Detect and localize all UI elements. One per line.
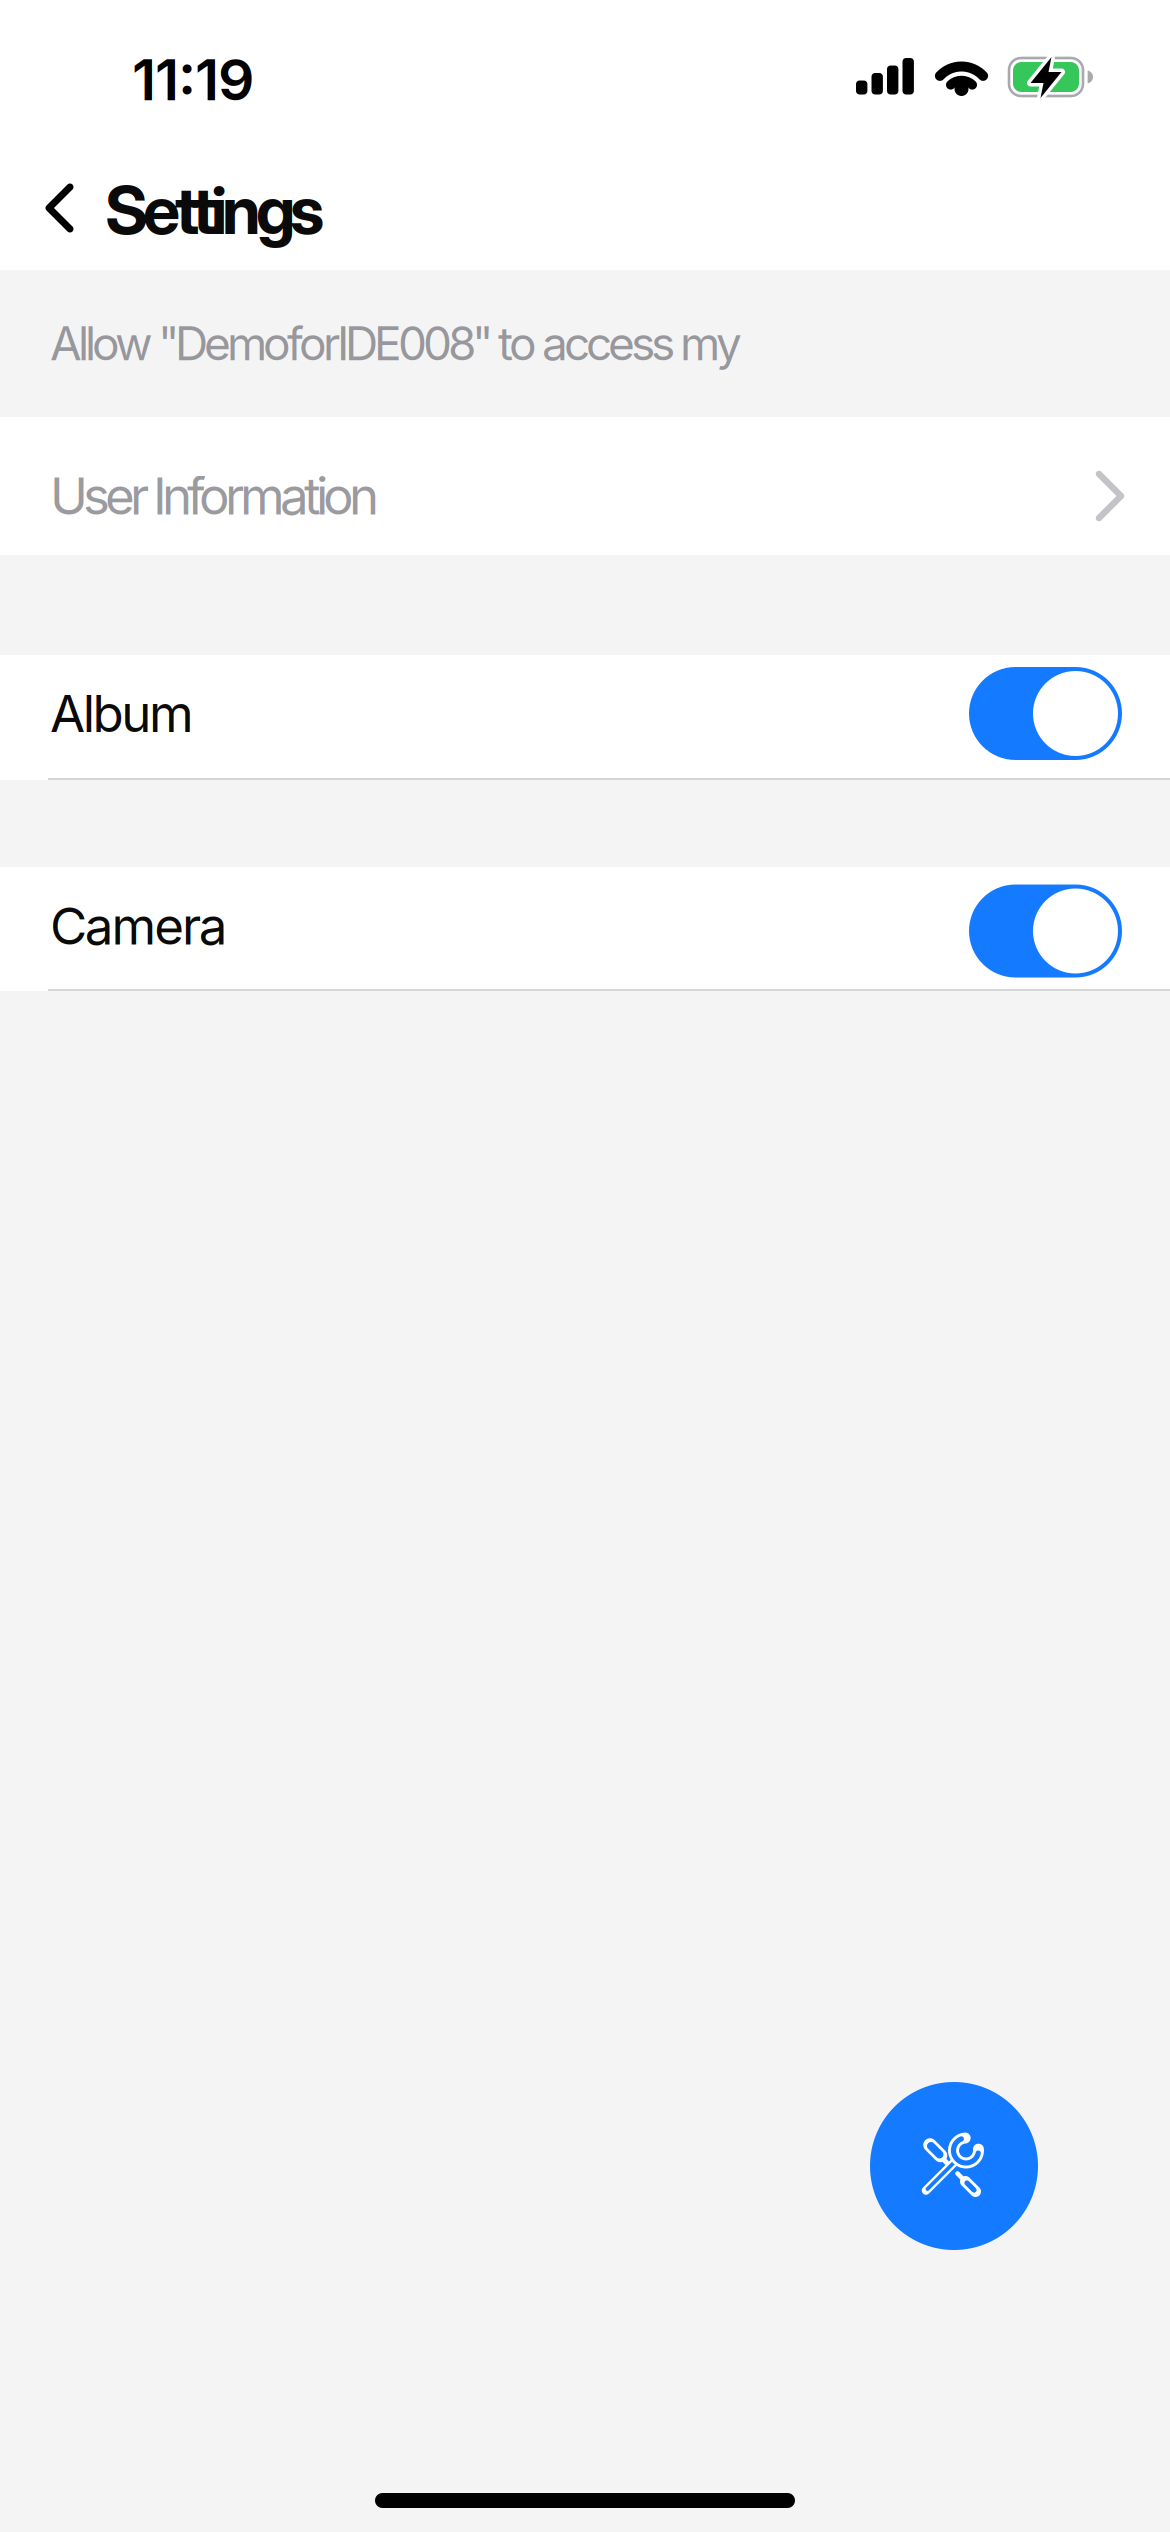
- button[interactable]: Developer tools: [870, 2082, 1038, 2250]
- staticText: Camera: [50, 896, 228, 956]
- button[interactable]: User Information: [0, 417, 1170, 555]
- staticText: Settings: [105, 171, 324, 249]
- staticText: Allow "DemoforIDE008" to access my: [50, 316, 742, 371]
- button[interactable]: Album access: [969, 667, 1122, 760]
- staticText: 11:19: [132, 46, 254, 113]
- button[interactable]: Camera access: [969, 884, 1122, 977]
- staticText: User Information: [50, 466, 379, 526]
- staticText: Album: [50, 683, 194, 744]
- button[interactable]: Back: [0, 130, 75, 232]
